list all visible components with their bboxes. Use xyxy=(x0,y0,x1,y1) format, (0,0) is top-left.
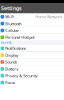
staticText: Bluetooth xyxy=(5,21,21,26)
staticText: Sounds xyxy=(5,59,17,65)
button[interactable]: Cellular xyxy=(0,27,64,34)
staticText: Focus xyxy=(5,80,15,85)
button[interactable]: Bluetooth xyxy=(0,20,64,27)
button[interactable]: Privacy & Security xyxy=(0,72,64,79)
staticText: Personal Hotspot xyxy=(5,35,34,40)
staticText: Privacy & Security xyxy=(5,73,37,78)
staticText: Cellular xyxy=(5,28,19,33)
button[interactable]: Personal Hotspot xyxy=(0,34,64,40)
staticText: Settings xyxy=(1,5,22,12)
staticText: Display xyxy=(5,52,18,58)
staticText: Battery xyxy=(5,66,18,71)
staticText: Home Network xyxy=(35,14,62,19)
button[interactable]: Wi-Fi xyxy=(0,13,64,20)
button[interactable]: Notifications xyxy=(0,45,64,51)
staticText: General xyxy=(0,41,11,44)
button[interactable]: Battery xyxy=(0,66,64,72)
staticText: Wi-Fi xyxy=(5,14,14,19)
staticText: Notifications xyxy=(5,46,26,51)
button[interactable]: Focus xyxy=(0,79,64,86)
button[interactable]: Sounds xyxy=(0,59,64,65)
button[interactable]: Display xyxy=(0,52,64,58)
